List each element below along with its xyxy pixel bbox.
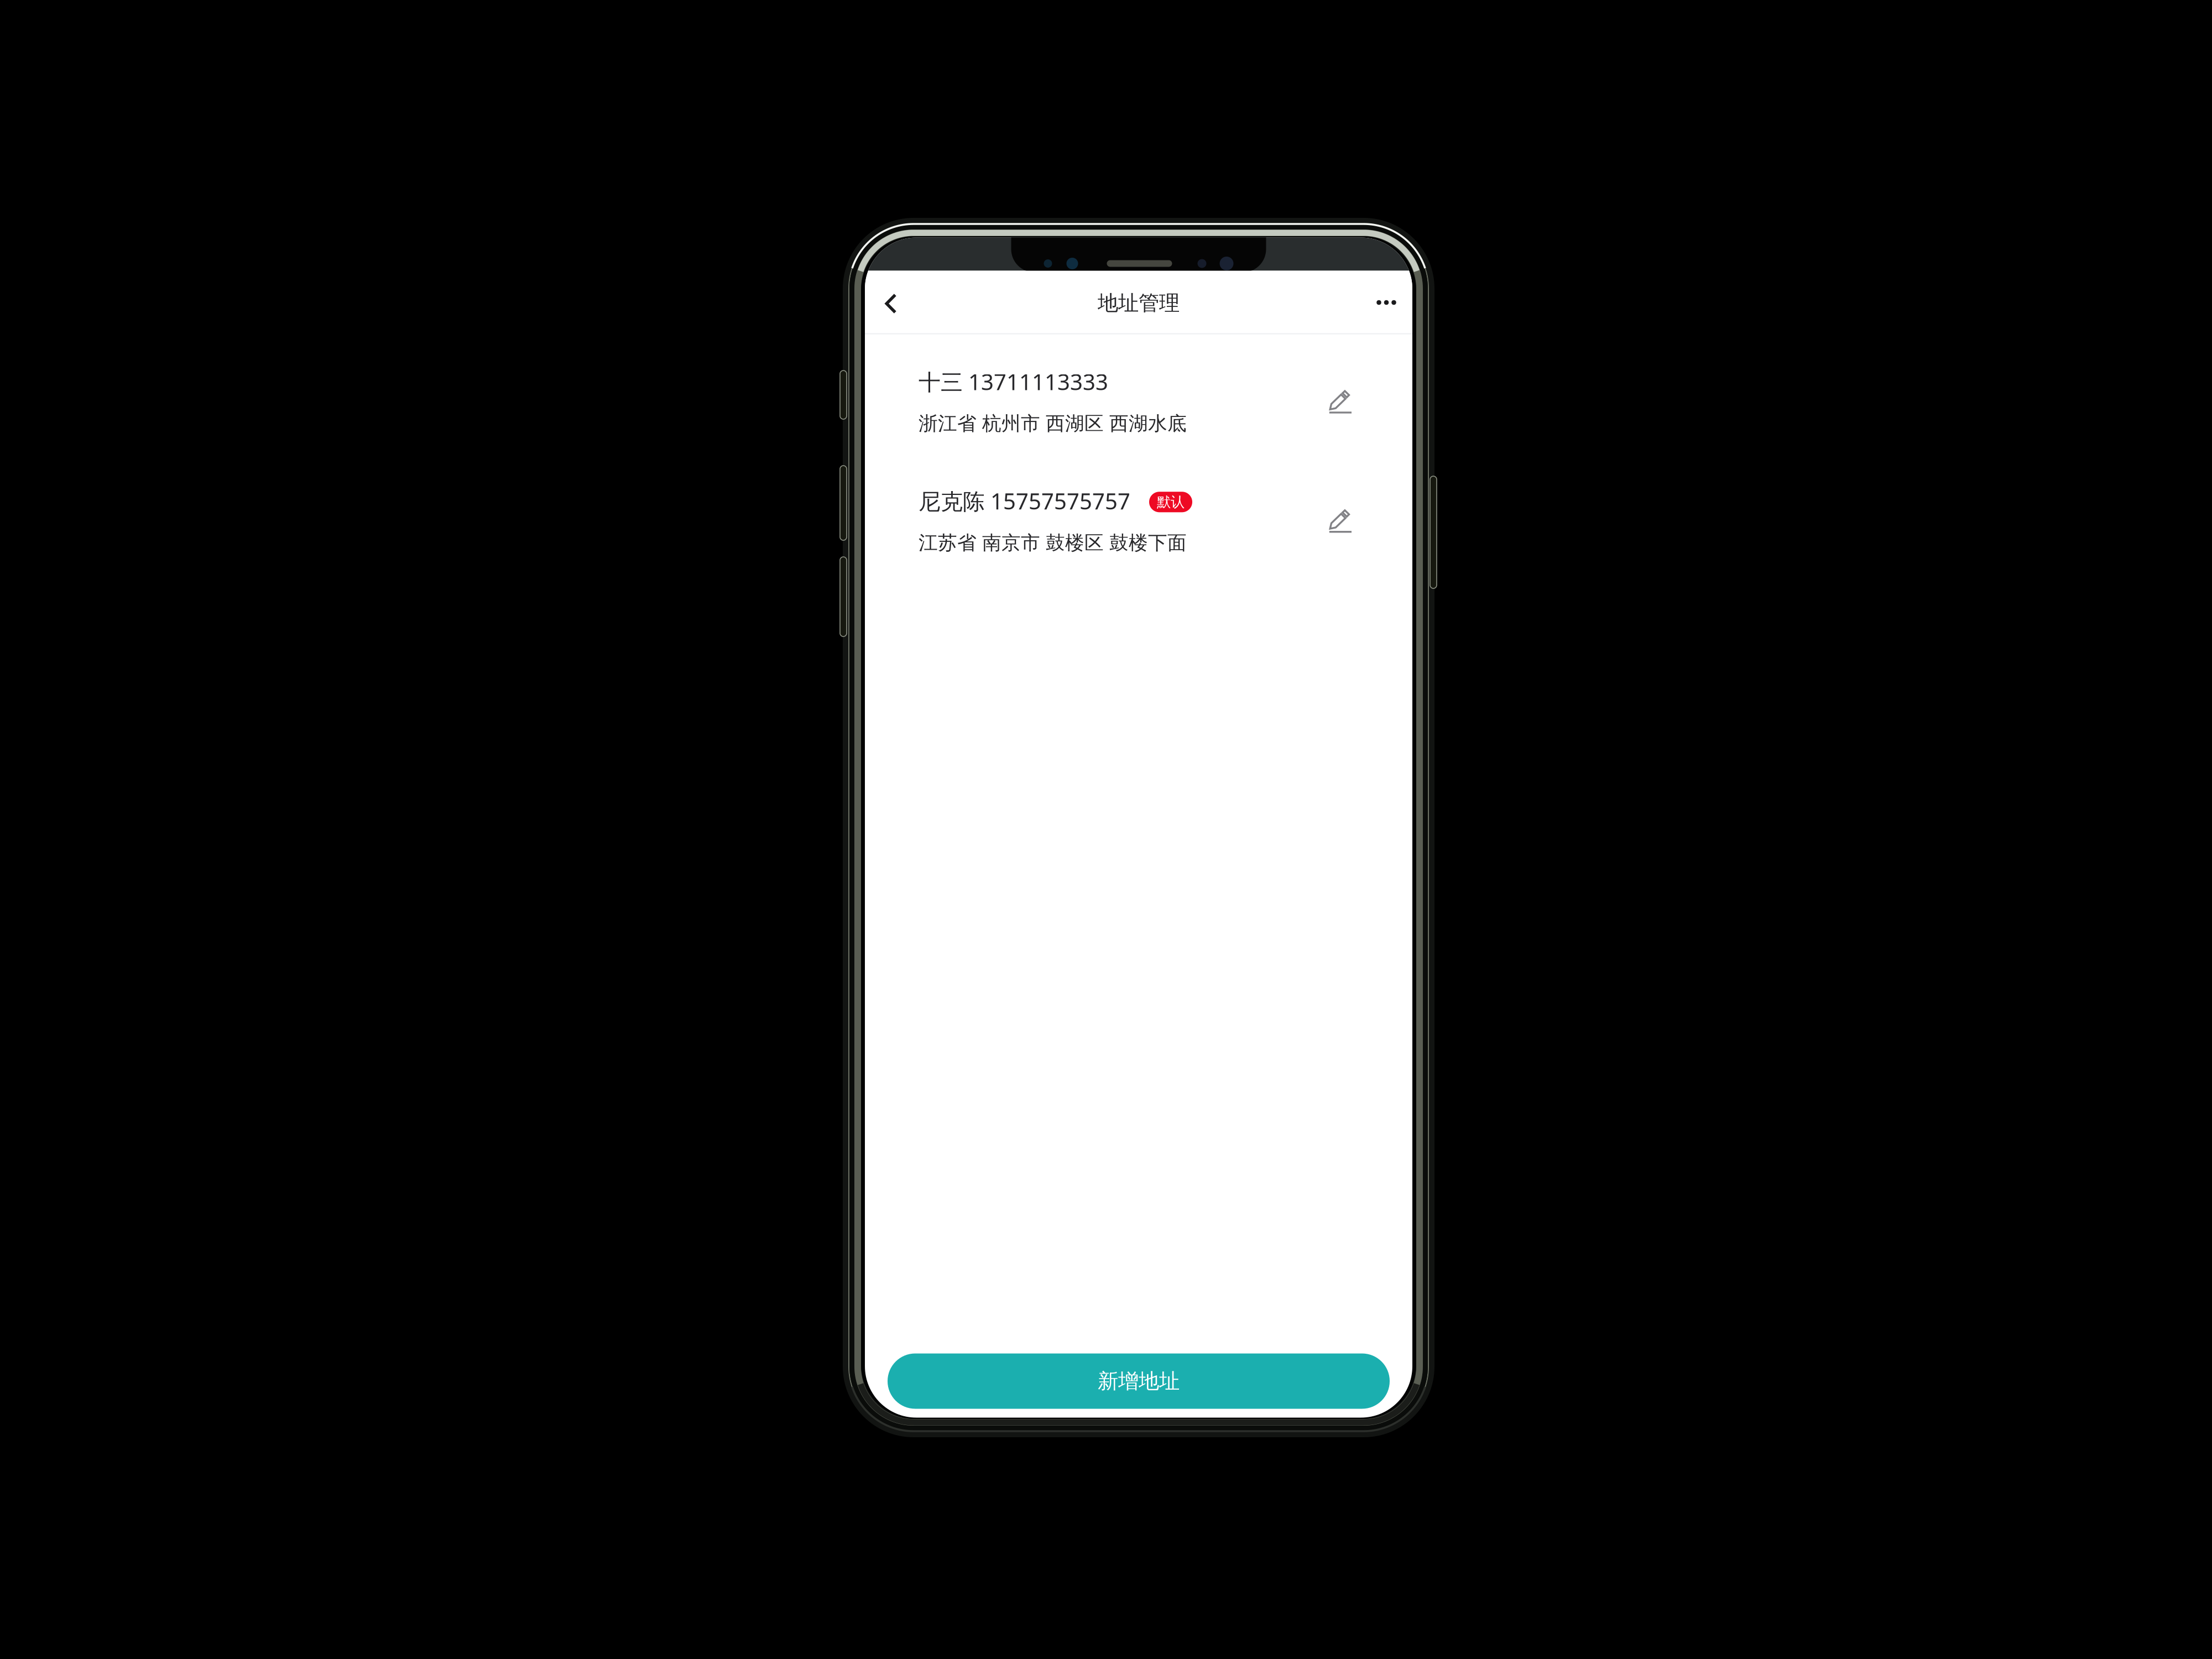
button[interactable]: Back xyxy=(865,271,917,334)
button[interactable]: More options xyxy=(1360,271,1412,334)
staticText: 十三 13711113333 xyxy=(919,367,1108,396)
staticText: 地址管理 xyxy=(1098,290,1180,316)
staticText: 尼克陈 15757575757 xyxy=(919,486,1130,516)
staticText: 浙江省 杭州市 西湖区 西湖水底 xyxy=(919,412,1187,435)
button[interactable]: 新增地址 xyxy=(888,1353,1390,1409)
staticText: 默认 xyxy=(1157,493,1185,511)
staticText: 江苏省 南京市 鼓楼区 鼓楼下面 xyxy=(919,531,1187,555)
button[interactable]: 十三 13711113333 xyxy=(865,341,1412,461)
button[interactable]: 尼克陈 15757575757 xyxy=(865,461,1412,580)
staticText: 新增地址 xyxy=(1098,1368,1180,1394)
